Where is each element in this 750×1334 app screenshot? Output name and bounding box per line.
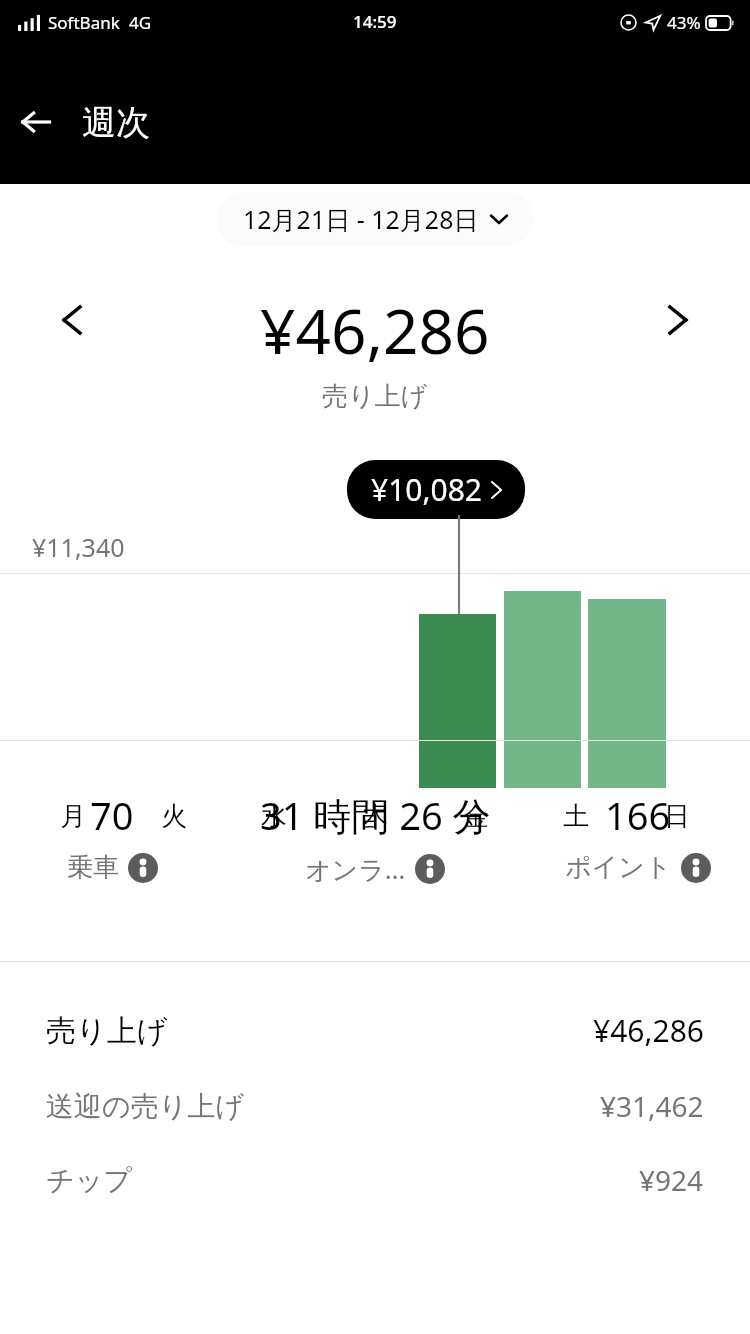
staticText: 日 — [664, 800, 690, 833]
button[interactable]: 送迎の売り上げ — [0, 1087, 750, 1125]
button[interactable]: Next week — [646, 288, 710, 352]
staticText: 金 — [463, 800, 489, 833]
staticText: ¥11,340 — [32, 530, 125, 564]
button[interactable]: チップ — [0, 1161, 750, 1199]
other: More information — [415, 854, 445, 884]
staticText: 70 — [90, 789, 134, 841]
staticText: SoftBank — [48, 11, 120, 34]
staticText: ¥46,286 — [260, 288, 490, 372]
staticText: 12月21日 - 12月28日 — [243, 202, 479, 236]
staticText: 4G — [129, 11, 152, 34]
button[interactable]: Back — [0, 86, 72, 158]
staticText: 火 — [161, 800, 187, 833]
button[interactable]: Previous week — [40, 288, 104, 352]
staticText: 水 — [261, 800, 287, 833]
button[interactable]: 売り上げ — [0, 1010, 750, 1051]
staticText: ¥31,462 — [600, 1087, 704, 1125]
staticText: チップ — [46, 1163, 132, 1198]
other: More information — [128, 853, 158, 883]
staticText: 月 — [60, 800, 86, 833]
staticText: 43% — [667, 11, 701, 34]
staticText: ¥10,082 — [371, 469, 482, 510]
button[interactable]: 31 時間 26 分 — [224, 789, 526, 887]
staticText: 31 時間 26 分 — [260, 789, 491, 841]
staticText: 土 — [563, 800, 589, 833]
staticText: ¥46,286 — [593, 1010, 704, 1051]
other: More information — [681, 853, 711, 883]
staticText: 乗車 — [67, 851, 119, 884]
staticText: 売り上げ — [322, 380, 428, 413]
staticText: 木 — [362, 800, 388, 833]
button[interactable]: ¥10,082 — [347, 460, 525, 519]
staticText: 送迎の売り上げ — [46, 1089, 244, 1124]
staticText: 売り上げ — [46, 1012, 168, 1050]
staticText: ¥924 — [639, 1161, 704, 1199]
button[interactable]: 70 — [0, 789, 224, 884]
staticText: オンラ… — [305, 851, 406, 887]
button[interactable]: 12月21日 - 12月28日 — [217, 192, 533, 246]
button[interactable]: 166 — [526, 789, 750, 884]
staticText: 週次 — [82, 101, 150, 144]
staticText: 14:59 — [353, 10, 397, 33]
staticText: ポイント — [565, 851, 672, 884]
staticText: 166 — [605, 789, 671, 841]
